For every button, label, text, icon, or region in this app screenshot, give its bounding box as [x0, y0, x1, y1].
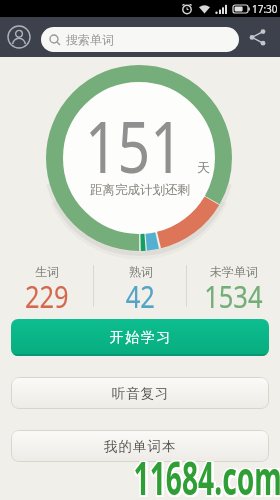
button[interactable]: 我的单词本 — [11, 430, 269, 462]
button[interactable] — [7, 25, 31, 49]
staticText: 熟词 — [129, 264, 153, 279]
staticText: 11684.com — [136, 444, 280, 499]
staticText: 229 — [25, 276, 69, 317]
button[interactable]: 熟词 — [94, 264, 187, 279]
button[interactable]: 生词 — [0, 264, 94, 279]
staticText: 11684.com — [133, 447, 280, 500]
staticText: 开始学习 — [109, 329, 171, 347]
staticText: 11684.com — [136, 445, 280, 500]
button[interactable]: 听音复习 — [11, 377, 269, 409]
staticText: 11684.com — [133, 445, 280, 500]
staticText: 151 — [85, 97, 183, 194]
staticText: 我的单词本 — [104, 438, 177, 455]
staticText: 搜索单词 — [66, 32, 114, 47]
staticText: 11684.com — [136, 447, 280, 500]
staticText: 未学单词 — [210, 264, 258, 279]
button[interactable]: 搜索单词 — [41, 27, 239, 52]
staticText: 天 — [197, 159, 210, 175]
staticText: 11684.com — [133, 444, 280, 499]
button[interactable] — [245, 29, 271, 47]
staticText: 17:30 — [252, 2, 278, 16]
button[interactable]: 开始学习 — [11, 319, 269, 356]
staticText: 42 — [126, 276, 155, 317]
staticText: 生词 — [35, 264, 59, 279]
staticText: 距离完成计划还剩 — [90, 182, 190, 198]
staticText: 11684.com — [134, 444, 280, 499]
staticText: 1534 — [204, 276, 263, 317]
button[interactable]: 未学单词 — [187, 264, 280, 279]
staticText: 听音复习 — [111, 385, 169, 402]
staticText: 11684.com — [134, 445, 280, 500]
staticText: 11684.com — [134, 447, 280, 500]
